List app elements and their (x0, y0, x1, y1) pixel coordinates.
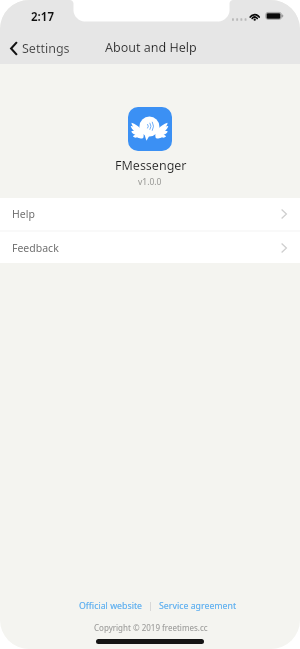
staticText: Copyright © 2019 freetimes.cc (94, 622, 208, 633)
button[interactable]: Service agreement (159, 600, 237, 612)
staticText: Official website (79, 600, 143, 612)
button[interactable]: Settings (4, 35, 76, 61)
button[interactable]: Official website (79, 600, 143, 612)
staticText: Service agreement (159, 600, 237, 612)
staticText: 2:17 (31, 9, 54, 25)
staticText: About and Help (105, 39, 197, 56)
staticText: v1.0.0 (138, 176, 162, 188)
staticText: FMessenger (115, 157, 187, 174)
button[interactable]: Help (0, 198, 300, 230)
staticText: Feedback (12, 241, 59, 255)
staticText: Settings (22, 40, 70, 57)
button[interactable]: Feedback (0, 232, 300, 263)
staticText: Help (12, 207, 35, 221)
